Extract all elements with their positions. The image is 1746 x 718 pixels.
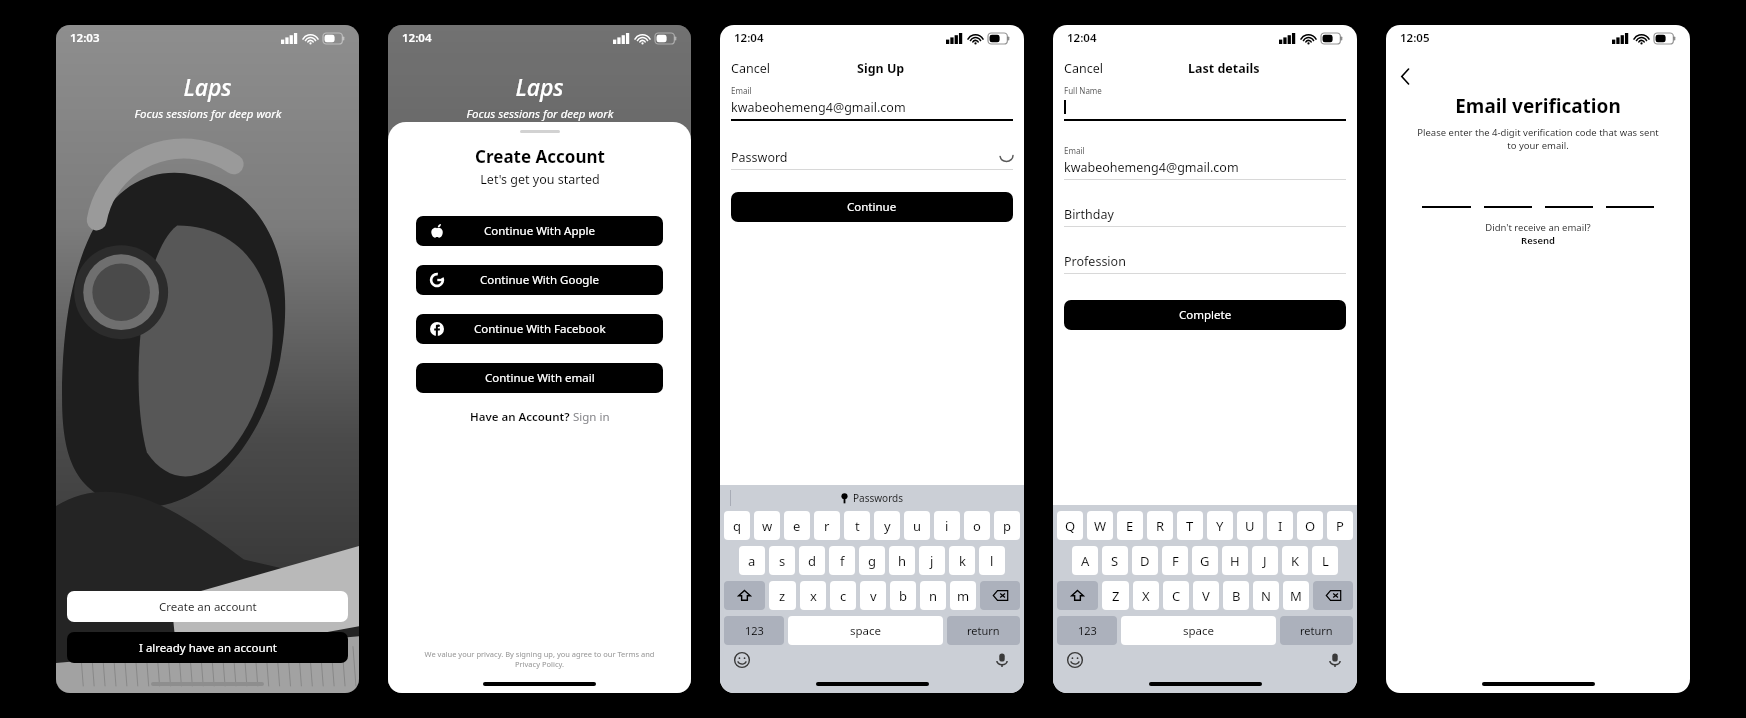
button[interactable]: Shift <box>1057 581 1098 610</box>
button[interactable]: I already have an account <box>67 632 348 663</box>
button[interactable]: Profession <box>1064 251 1346 274</box>
button[interactable]: u <box>904 511 930 540</box>
button[interactable]: a <box>739 546 765 575</box>
button[interactable]: Dictation <box>994 652 1010 668</box>
button[interactable]: Birthday <box>1064 204 1346 227</box>
button[interactable] <box>1422 188 1471 208</box>
staticText: u <box>913 517 922 535</box>
button[interactable]: Continue With Google <box>416 265 663 295</box>
button[interactable]: r <box>814 511 840 540</box>
button[interactable]: M <box>1283 581 1309 610</box>
button[interactable]: m <box>950 581 976 610</box>
button[interactable]: Cancel <box>731 60 770 77</box>
button[interactable]: x <box>800 581 826 610</box>
button[interactable]: Backspace <box>1313 581 1353 610</box>
button[interactable]: B <box>1223 581 1249 610</box>
button[interactable]: Create an account <box>67 591 348 622</box>
staticText: G <box>1200 552 1210 570</box>
button[interactable]: v <box>860 581 886 610</box>
button[interactable]: 123 <box>1057 616 1117 645</box>
button[interactable]: Q <box>1057 511 1083 540</box>
button[interactable]: N <box>1253 581 1279 610</box>
button[interactable]: return <box>947 616 1020 645</box>
button[interactable]: Email <box>1064 145 1346 180</box>
button[interactable]: U <box>1237 511 1263 540</box>
button[interactable]: Resend <box>1521 234 1555 247</box>
button[interactable]: c <box>830 581 856 610</box>
button[interactable]: y <box>874 511 900 540</box>
button[interactable]: Complete <box>1064 300 1346 330</box>
button[interactable]: t <box>844 511 870 540</box>
staticText: x <box>810 587 817 605</box>
staticText: Email <box>1064 145 1085 156</box>
button[interactable]: D <box>1132 546 1158 575</box>
button[interactable]: g <box>859 546 885 575</box>
button[interactable]: l <box>979 546 1005 575</box>
button[interactable]: S <box>1102 546 1128 575</box>
button[interactable]: e <box>784 511 810 540</box>
button[interactable]: P <box>1327 511 1353 540</box>
button[interactable]: Continue With Apple <box>416 216 663 246</box>
button[interactable]: o <box>964 511 990 540</box>
staticText: p <box>1003 517 1011 535</box>
button[interactable]: C <box>1163 581 1189 610</box>
staticText: C <box>1172 587 1181 605</box>
button[interactable]: w <box>754 511 780 540</box>
button[interactable]: j <box>919 546 945 575</box>
button[interactable]: h <box>889 546 915 575</box>
button[interactable]: space <box>1121 616 1276 645</box>
button[interactable]: Continue <box>731 192 1013 222</box>
button[interactable]: Have an Account? <box>470 409 610 425</box>
staticText: k <box>959 552 966 570</box>
button[interactable]: z <box>769 581 796 610</box>
button[interactable]: Continue With Facebook <box>416 314 663 344</box>
button[interactable]: Password <box>731 147 1013 170</box>
button[interactable]: V <box>1193 581 1219 610</box>
button[interactable]: Dictation <box>1327 652 1343 668</box>
button[interactable]: Cancel <box>1064 60 1103 77</box>
staticText: Create Account <box>475 145 605 168</box>
button[interactable]: T <box>1177 511 1203 540</box>
button[interactable]: Shift <box>724 581 765 610</box>
button[interactable]: d <box>799 546 825 575</box>
button[interactable] <box>1606 188 1654 208</box>
button[interactable]: H <box>1222 546 1248 575</box>
button[interactable]: f <box>829 546 855 575</box>
button[interactable]: q <box>724 511 750 540</box>
button[interactable]: i <box>934 511 960 540</box>
button[interactable]: F <box>1162 546 1188 575</box>
button[interactable] <box>1545 188 1593 208</box>
button[interactable]: k <box>949 546 975 575</box>
button[interactable]: Y <box>1207 511 1233 540</box>
button[interactable]: Emoji <box>1067 652 1083 668</box>
button[interactable]: s <box>769 546 795 575</box>
staticText: Continue With Google <box>480 272 599 288</box>
button[interactable]: J <box>1252 546 1278 575</box>
button[interactable]: Emoji <box>734 652 750 668</box>
button[interactable]: return <box>1280 616 1353 645</box>
button[interactable]: Backspace <box>980 581 1020 610</box>
button[interactable]: b <box>890 581 916 610</box>
staticText: space <box>1183 623 1215 639</box>
button[interactable]: 123 <box>724 616 784 645</box>
button[interactable]: p <box>994 511 1020 540</box>
button[interactable]: space <box>788 616 943 645</box>
button[interactable]: Continue With email <box>416 363 663 393</box>
button[interactable] <box>1484 188 1532 208</box>
button[interactable]: Back <box>1400 65 1422 87</box>
button[interactable]: X <box>1133 581 1159 610</box>
button[interactable]: W <box>1087 511 1113 540</box>
button[interactable]: n <box>920 581 946 610</box>
button[interactable]: Full Name <box>1064 85 1346 121</box>
button[interactable]: A <box>1072 546 1098 575</box>
button[interactable]: L <box>1312 546 1338 575</box>
button[interactable]: E <box>1117 511 1143 540</box>
button[interactable]: Email <box>731 85 1013 121</box>
button[interactable]: Z <box>1102 581 1129 610</box>
button[interactable]: K <box>1282 546 1308 575</box>
button[interactable]: I <box>1267 511 1293 540</box>
button[interactable]: G <box>1192 546 1218 575</box>
button[interactable]: R <box>1147 511 1173 540</box>
staticText: Email <box>731 85 752 96</box>
button[interactable]: O <box>1297 511 1323 540</box>
